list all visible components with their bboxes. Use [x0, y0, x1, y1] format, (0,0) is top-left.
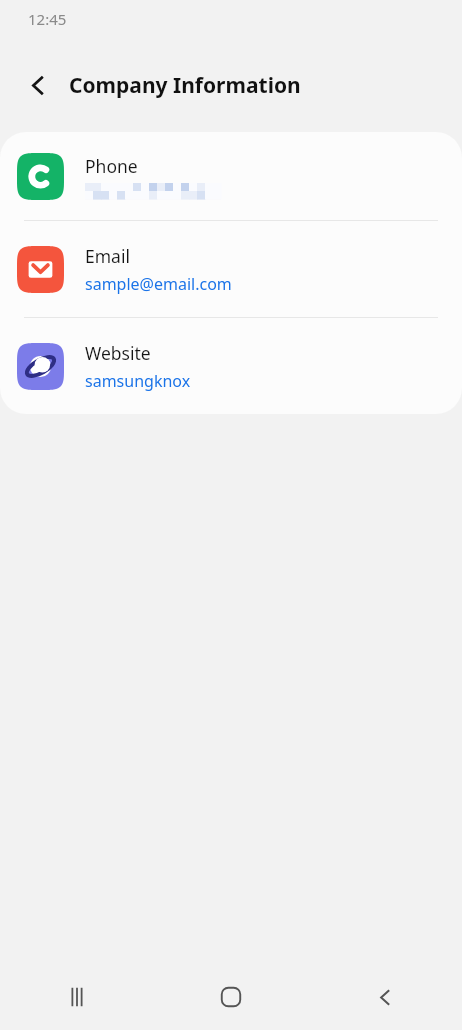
button[interactable]: Website [0, 318, 462, 414]
button[interactable]: Navigate up [14, 61, 62, 109]
button[interactable]: Phone [0, 132, 462, 220]
button[interactable]: Back [308, 964, 462, 1030]
button[interactable]: Recent apps [0, 964, 154, 1030]
button[interactable]: Email [0, 221, 462, 317]
staticText: sample@email.com [85, 273, 232, 295]
staticText: Phone [85, 154, 138, 178]
staticText: Website [85, 341, 151, 365]
button[interactable]: Home [154, 964, 308, 1030]
staticText: 12:45 [28, 9, 67, 29]
staticText: Company Information [69, 71, 301, 100]
staticText: samsungknox [85, 370, 191, 392]
staticText: Email [85, 244, 130, 268]
